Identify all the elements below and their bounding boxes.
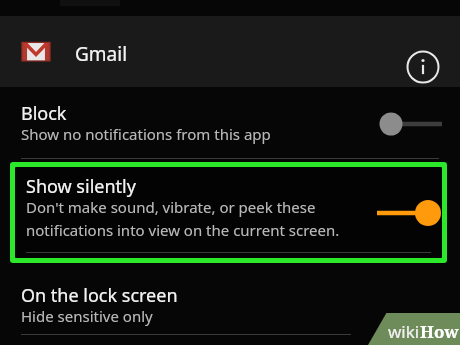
staticText: Show no notifications from this app <box>21 124 271 144</box>
button[interactable]: Block <box>0 88 460 158</box>
staticText: notifications into view on the current s… <box>26 220 340 240</box>
staticText: wiki <box>388 320 420 343</box>
staticText: Hide sensitive only <box>21 306 153 326</box>
button[interactable]: On the lock screen <box>0 272 460 336</box>
staticText: Gmail <box>75 41 128 67</box>
staticText: Show silently <box>26 174 136 199</box>
button[interactable]: Gmail <box>0 16 460 87</box>
staticText: Don't make sound, vibrate, or peek these <box>26 197 316 217</box>
staticText: Block <box>21 101 67 126</box>
button[interactable]: Show silently <box>15 167 442 258</box>
staticText: On the lock screen <box>21 283 178 308</box>
staticText: How <box>420 320 459 343</box>
button[interactable]: App info <box>405 49 441 85</box>
